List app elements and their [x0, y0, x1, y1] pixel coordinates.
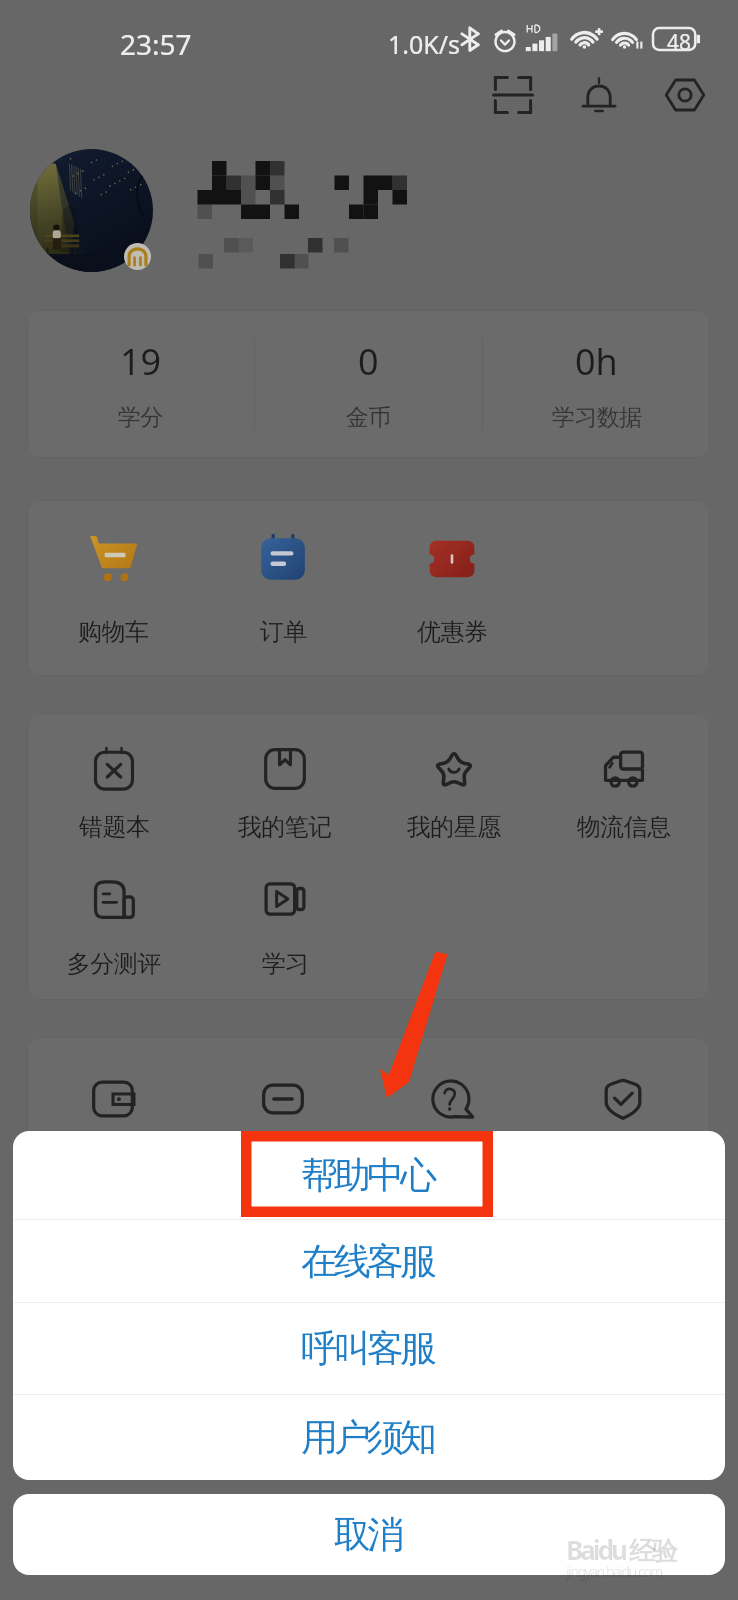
button[interactable]: 购物车 — [38, 533, 188, 647]
button[interactable]: Scan — [485, 67, 541, 123]
staticText: 错题本 — [79, 812, 150, 842]
button[interactable]: 19 — [27, 310, 254, 458]
button[interactable]: Notifications — [571, 67, 627, 123]
button[interactable]: 订单 — [208, 533, 358, 647]
staticText: 0h — [575, 337, 618, 386]
button[interactable]: 学习 — [210, 878, 360, 979]
button[interactable]: 0h — [483, 310, 710, 458]
staticText: 48 — [663, 28, 695, 57]
staticText: 在线客服 — [303, 1238, 435, 1285]
button[interactable]: Menu item — [38, 1078, 188, 1120]
button[interactable]: Menu item — [208, 1078, 358, 1120]
button[interactable]: 用户须知 — [13, 1395, 725, 1480]
button[interactable]: 错题本 — [39, 748, 189, 842]
staticText: 1.0K/s — [388, 27, 461, 61]
staticText: 呼叫客服 — [303, 1325, 435, 1372]
staticText: 订单 — [260, 617, 307, 647]
button[interactable]: Menu item — [378, 1078, 528, 1120]
staticText: 23:57 — [120, 25, 192, 63]
staticText: 学习 — [262, 949, 309, 979]
button[interactable]: 我的笔记 — [210, 748, 360, 842]
staticText: Baidu 经验 — [566, 1532, 675, 1568]
staticText: 购物车 — [78, 617, 149, 647]
staticText: jingyan.baidu.com — [566, 1562, 662, 1581]
staticText: 学分 — [118, 403, 163, 432]
button[interactable]: 呼叫客服 — [13, 1303, 725, 1394]
button[interactable]: 物流信息 — [549, 748, 699, 842]
staticText: 19 — [120, 337, 162, 386]
staticText: 优惠券 — [417, 617, 488, 647]
button[interactable]: 取消 — [13, 1494, 725, 1575]
staticText: 0 — [358, 337, 379, 386]
staticText: 多分测评 — [67, 949, 161, 979]
staticText: 用户须知 — [303, 1414, 435, 1461]
button[interactable]: Menu item — [548, 1078, 698, 1120]
button[interactable]: 在线客服 — [13, 1220, 725, 1302]
staticText: 物流信息 — [577, 812, 671, 842]
button[interactable]: 我的星愿 — [379, 748, 529, 842]
button[interactable]: 0 — [255, 310, 482, 458]
staticText: 我的笔记 — [238, 812, 332, 842]
button[interactable]: Avatar — [30, 149, 153, 272]
staticText: 学习数据 — [552, 403, 642, 432]
button[interactable]: 多分测评 — [39, 878, 189, 979]
staticText: 我的星愿 — [407, 812, 501, 842]
button[interactable]: Settings — [657, 67, 713, 123]
staticText: 帮助中心 — [303, 1152, 435, 1199]
staticText: 金币 — [346, 403, 391, 432]
button[interactable]: 帮助中心 — [13, 1131, 725, 1219]
button[interactable]: 优惠券 — [377, 533, 527, 647]
staticText: 取消 — [336, 1511, 402, 1558]
